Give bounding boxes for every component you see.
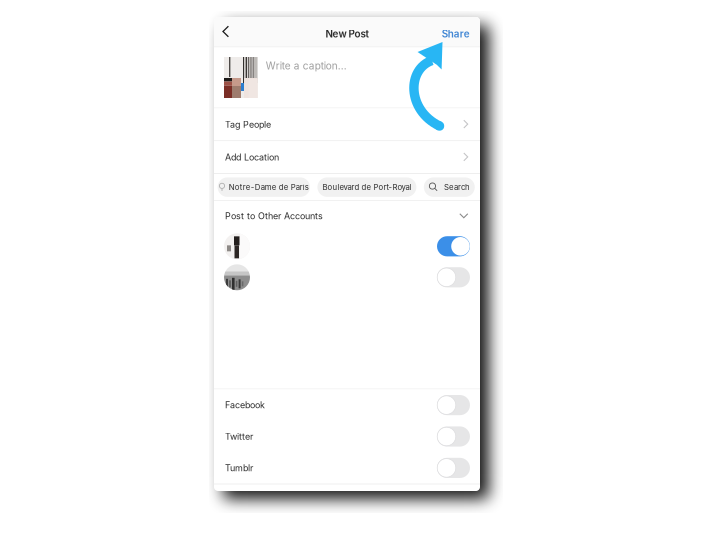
button[interactable] [214,231,480,262]
button[interactable]: Share [432,17,480,47]
staticText: Add Location [225,152,279,163]
button[interactable]: Back [214,17,238,47]
staticText: Notre-Dame de Paris [229,182,309,192]
staticText: Facebook [225,400,265,410]
button[interactable] [214,262,480,293]
button[interactable]: Facebook [214,389,480,421]
staticText: Boulevard de Port-Royal [322,182,411,192]
button[interactable]: Boulevard de Port-Royal [317,177,416,197]
staticText: Post to Other Accounts [225,210,323,221]
button[interactable]: Post to Other Accounts [214,201,480,231]
button[interactable]: Add Location [214,141,480,173]
button[interactable]: Write a caption... [214,47,480,108]
button[interactable]: Notre-Dame de Paris [218,177,310,197]
button[interactable]: Search [424,177,475,197]
staticText: Write a caption... [266,60,347,72]
staticText: Tag People [225,119,271,130]
staticText: Tumblr [225,462,253,473]
staticText: Search [444,182,470,192]
staticText: Twitter [225,431,253,442]
staticText: New Post [325,28,368,40]
button[interactable]: Twitter [214,421,480,452]
button[interactable]: Tumblr [214,452,480,484]
button[interactable]: Tag People [214,108,480,140]
staticText: Share [442,28,470,40]
